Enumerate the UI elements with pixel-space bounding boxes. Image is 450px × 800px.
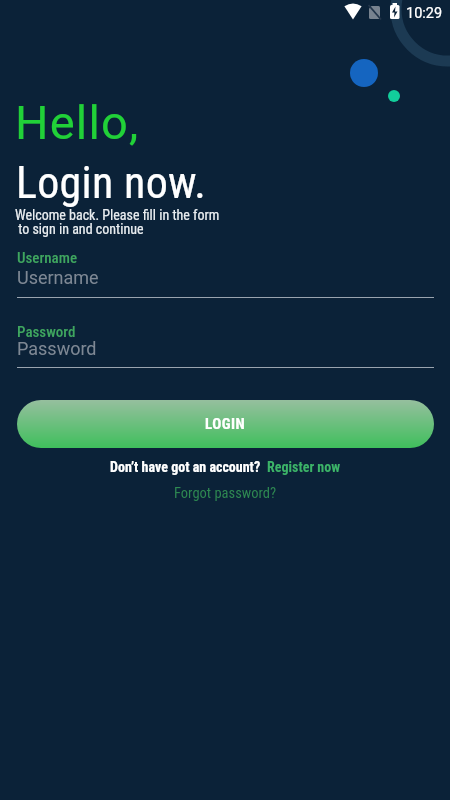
staticText: Password [17,338,97,359]
staticText: Username [17,249,78,267]
staticText: Welcome back. Please fill in the form [15,207,220,223]
staticText: Login now. [16,157,207,209]
button[interactable]: Register now [267,459,340,475]
button[interactable]: Password [0,320,450,373]
button[interactable]: Username [0,246,450,299]
staticText: Don’t have got an account? [110,459,267,475]
button[interactable]: Forgot password? [174,485,277,502]
staticText: Hello, [15,95,140,150]
staticText: Username [17,267,99,288]
staticText: LOGIN [205,415,246,433]
staticText: to sign in and continue [15,221,144,237]
button[interactable]: LOGIN [17,400,434,448]
staticText: Password [17,323,76,341]
staticText: 10:29 [406,5,443,22]
